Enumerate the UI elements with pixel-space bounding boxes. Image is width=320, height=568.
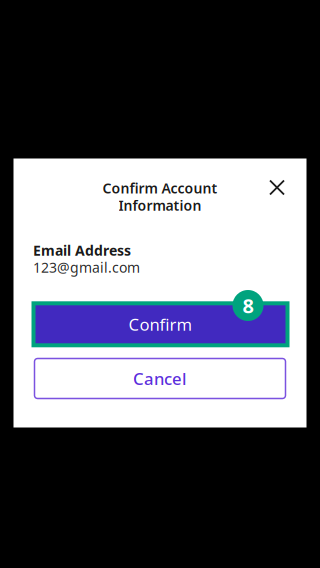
button[interactable]: Cancel bbox=[34, 358, 285, 398]
staticText: Confirm Account bbox=[102, 178, 217, 198]
staticText: 123@gmail.com bbox=[33, 258, 140, 277]
button[interactable]: Close bbox=[260, 170, 294, 204]
staticText: Information bbox=[118, 196, 201, 215]
staticText: Confirm bbox=[128, 313, 192, 336]
button[interactable]: Confirm bbox=[31, 301, 289, 347]
staticText: 8 bbox=[242, 292, 253, 319]
staticText: Cancel bbox=[133, 367, 187, 390]
staticText: Email Address bbox=[33, 241, 131, 260]
